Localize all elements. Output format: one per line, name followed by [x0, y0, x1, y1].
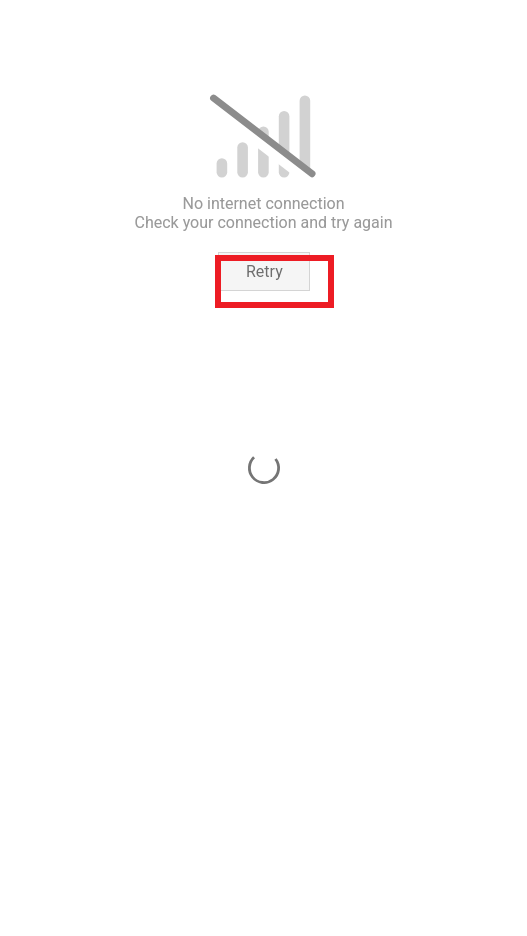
staticText: Check your connection and try again [134, 213, 393, 232]
other: No signal [200, 88, 324, 184]
staticText: No internet connection [182, 194, 345, 213]
other: Loading [248, 452, 280, 484]
staticText: Retry [246, 262, 283, 281]
button[interactable]: Retry [218, 252, 310, 291]
